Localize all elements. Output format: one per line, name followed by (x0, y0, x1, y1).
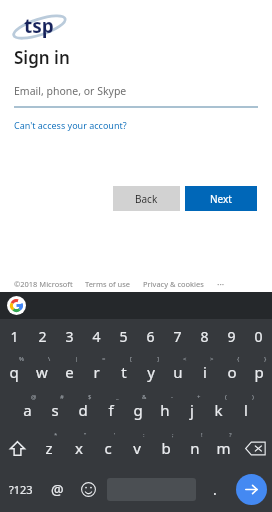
staticText: & (142, 393, 147, 401)
button[interactable]: v (122, 429, 151, 467)
button[interactable]: e (56, 353, 83, 391)
staticText: \ (48, 355, 51, 363)
button[interactable]: 5 (110, 319, 137, 353)
staticText: 1 (10, 327, 19, 346)
button[interactable]: 2 (28, 319, 56, 353)
staticText: v (133, 438, 141, 458)
button[interactable]: o (218, 353, 245, 391)
staticText: Back (135, 192, 158, 206)
staticText: 7 (173, 327, 182, 346)
staticText: e (65, 362, 74, 382)
staticText: : (143, 431, 145, 439)
button[interactable]: i (191, 353, 218, 391)
button[interactable]: ?123 (0, 467, 42, 512)
button[interactable]: Privacy & cookies (143, 279, 204, 289)
button[interactable]: Next (185, 186, 257, 211)
staticText: 0 (254, 327, 263, 346)
staticText: h (160, 400, 170, 420)
button[interactable]: x (64, 429, 93, 467)
staticText: $ (88, 393, 92, 401)
button[interactable]: 6 (137, 319, 164, 353)
staticText: @ (51, 480, 64, 499)
staticText: ( (225, 393, 227, 401)
button[interactable]: Shift (0, 429, 34, 467)
staticText: p (254, 362, 264, 382)
staticText: ! (201, 431, 203, 439)
button[interactable]: 4 (83, 319, 110, 353)
staticText: z (45, 438, 53, 458)
button[interactable]: p (245, 353, 272, 391)
button[interactable]: 9 (218, 319, 245, 353)
button[interactable]: s (41, 391, 69, 429)
button[interactable]: Email, phone, or Skype (14, 84, 258, 108)
staticText: o (227, 362, 237, 382)
staticText: % (19, 355, 24, 363)
button[interactable]: b (151, 429, 180, 467)
button[interactable]: 7 (164, 319, 191, 353)
staticText: d (78, 400, 88, 420)
staticText: 2 (38, 327, 47, 346)
button[interactable]: y (137, 353, 164, 391)
staticText: [ (130, 355, 132, 363)
staticText: c (104, 438, 112, 458)
button[interactable]: m (209, 429, 238, 467)
button[interactable]: ©2018 Microsoft (14, 279, 73, 289)
staticText: s (51, 400, 59, 420)
button[interactable]: 8 (191, 319, 218, 353)
button[interactable]: g (124, 391, 151, 429)
button[interactable]: k (205, 391, 232, 429)
button[interactable]: h (151, 391, 178, 429)
button[interactable]: j (178, 391, 205, 429)
staticText: ; (172, 431, 174, 439)
button[interactable]: l (232, 391, 259, 429)
staticText: r (93, 362, 100, 382)
button[interactable]: f (97, 391, 124, 429)
button[interactable]: Enter (236, 474, 267, 505)
button[interactable]: Backspace (238, 429, 272, 467)
button[interactable]: z (34, 429, 64, 467)
staticText: Terms of use (85, 279, 131, 289)
button[interactable]: u (164, 353, 191, 391)
staticText: - (171, 393, 173, 401)
button[interactable]: t (110, 353, 137, 391)
button[interactable]: r (83, 353, 110, 391)
staticText: u (173, 362, 183, 382)
button[interactable]: Terms of use (85, 279, 131, 289)
staticText: m (216, 438, 231, 458)
staticText: ) (252, 393, 254, 401)
staticText: " (84, 431, 87, 439)
staticText: t (121, 362, 127, 382)
button[interactable]: c (93, 429, 122, 467)
button[interactable]: @ (42, 467, 73, 512)
button[interactable]: Can't access your account? (14, 119, 127, 131)
staticText: l (244, 400, 248, 420)
button[interactable]: 0 (245, 319, 272, 353)
staticText: f (108, 400, 114, 420)
button[interactable]: a (13, 391, 41, 429)
button[interactable]: q (0, 353, 28, 391)
staticText: ··· (217, 278, 225, 290)
staticText: ? (229, 431, 232, 439)
staticText: > (210, 355, 214, 363)
staticText: 4 (92, 327, 101, 346)
staticText: 9 (227, 327, 236, 346)
button[interactable]: 3 (56, 319, 83, 353)
staticText: y (147, 362, 155, 382)
button[interactable]: d (69, 391, 97, 429)
button[interactable]: . (200, 467, 230, 512)
button[interactable]: More options (213, 277, 229, 291)
staticText: k (214, 400, 223, 420)
button[interactable]: Back (113, 186, 180, 211)
button[interactable]: Emoji (73, 467, 103, 512)
staticText: _ (116, 393, 119, 401)
button[interactable]: n (180, 429, 209, 467)
button[interactable]: 1 (0, 319, 28, 353)
staticText: ©2018 Microsoft (14, 279, 73, 289)
staticText: + (197, 393, 201, 401)
staticText: x (75, 438, 83, 458)
button[interactable]: w (28, 353, 56, 391)
staticText: n (190, 438, 200, 458)
button[interactable]: Google (7, 296, 26, 315)
staticText: Next (210, 192, 232, 206)
